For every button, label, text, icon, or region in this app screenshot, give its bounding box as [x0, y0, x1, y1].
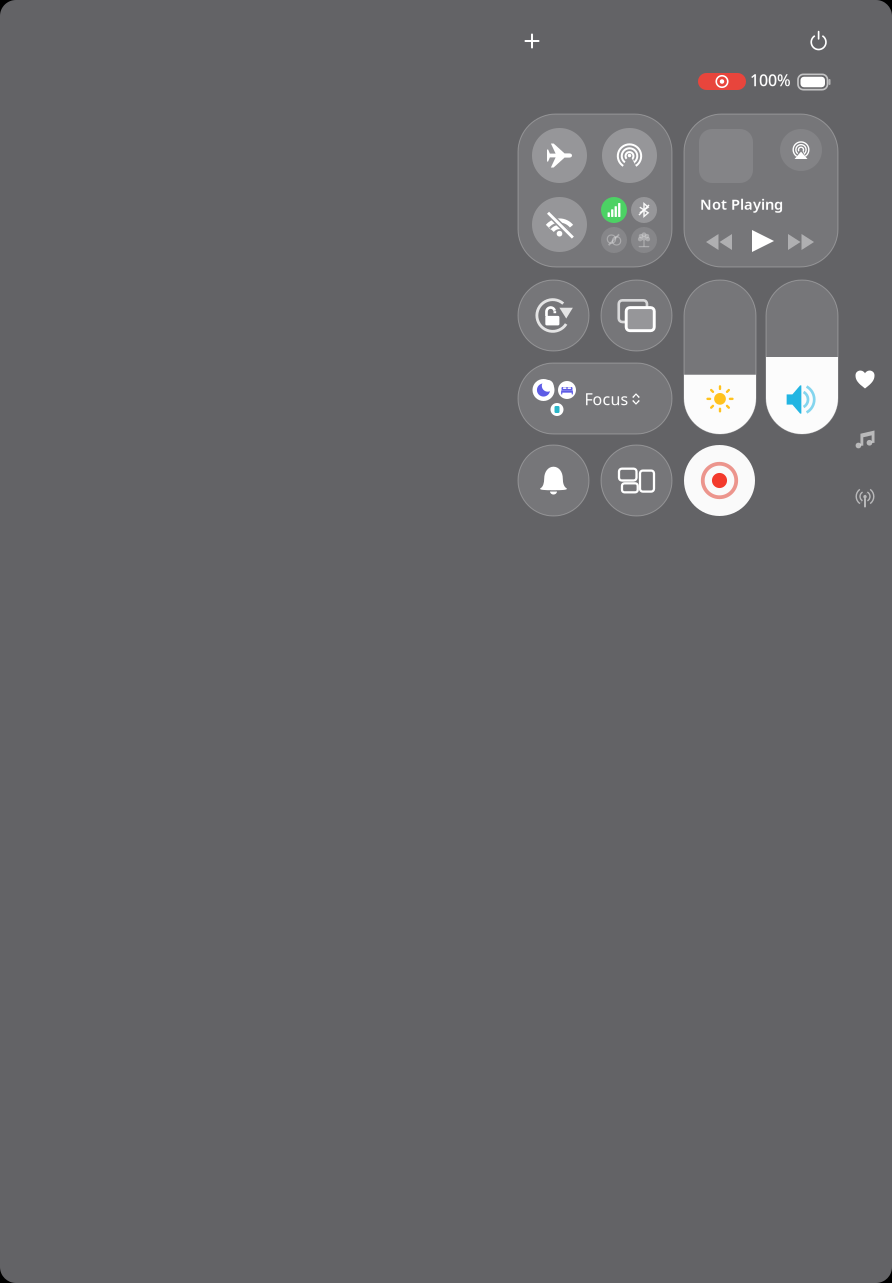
button[interactable]: Bluetooth	[631, 197, 657, 223]
button[interactable]: Silent Mode	[518, 445, 589, 516]
button[interactable]: AirDrop	[602, 128, 657, 183]
staticText: Focus	[584, 388, 628, 410]
button[interactable]: Cellular Data	[601, 197, 627, 223]
button[interactable]: Play	[751, 228, 775, 254]
button[interactable]: Add a Control	[510, 19, 554, 63]
button[interactable]: Screen Mirroring	[601, 280, 672, 351]
button[interactable]: Focus	[518, 363, 672, 434]
staticText: 100%	[750, 69, 791, 91]
button[interactable]: Screen Recording Active	[698, 73, 746, 90]
button[interactable]: Next Track	[788, 231, 814, 253]
button[interactable]: Stage Manager	[601, 445, 672, 516]
button[interactable]: Previous Track	[706, 231, 732, 253]
button[interactable]: Screen Recording	[684, 445, 755, 516]
button[interactable]: Wi-Fi	[532, 197, 587, 252]
button[interactable]: Favorites Controls	[851, 365, 879, 393]
button[interactable]: Media Controls	[851, 426, 879, 454]
staticText: Not Playing	[700, 194, 783, 214]
button[interactable]: Connectivity Controls	[851, 484, 879, 512]
button[interactable]: Volume	[766, 280, 838, 434]
button[interactable]: Power Off	[797, 19, 841, 63]
button[interactable]: Rotation Lock	[518, 280, 589, 351]
button[interactable]: VPN	[631, 227, 657, 253]
button[interactable]: Display Brightness	[684, 280, 756, 434]
button[interactable]: SharePlay	[601, 227, 627, 253]
button[interactable]: AirPlay	[780, 129, 822, 171]
button[interactable]: Airplane Mode	[532, 128, 587, 183]
